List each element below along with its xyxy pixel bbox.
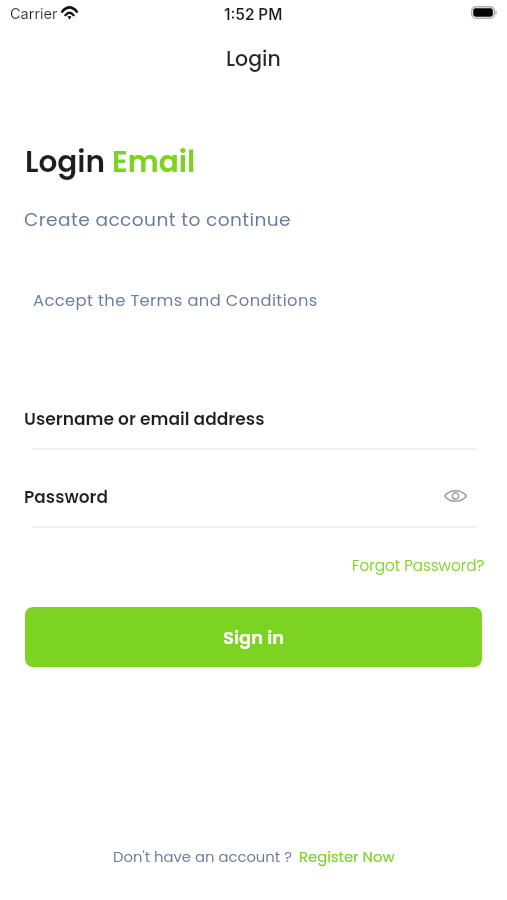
staticText: Create account to continue <box>24 206 292 232</box>
button[interactable]: Forgot Password? <box>352 555 485 576</box>
button[interactable]: Accept the Terms and Conditions <box>33 289 318 312</box>
button[interactable]: Sign in <box>25 607 482 667</box>
staticText: Login <box>226 44 281 73</box>
staticText: Username or email address <box>24 407 265 431</box>
staticText: 1:52 PM <box>224 5 283 24</box>
staticText: Password <box>24 485 108 509</box>
staticText: Register Now <box>299 846 395 867</box>
button[interactable]: Register Now <box>299 846 395 867</box>
staticText: Login Email <box>25 141 196 182</box>
staticText: Forgot Password? <box>352 555 485 576</box>
staticText: Carrier <box>10 5 58 23</box>
button[interactable]: Show password <box>442 483 468 509</box>
staticText: Don't have an account ? <box>113 846 292 867</box>
staticText: Accept the Terms and Conditions <box>33 289 318 312</box>
staticText: Sign in <box>223 625 285 650</box>
